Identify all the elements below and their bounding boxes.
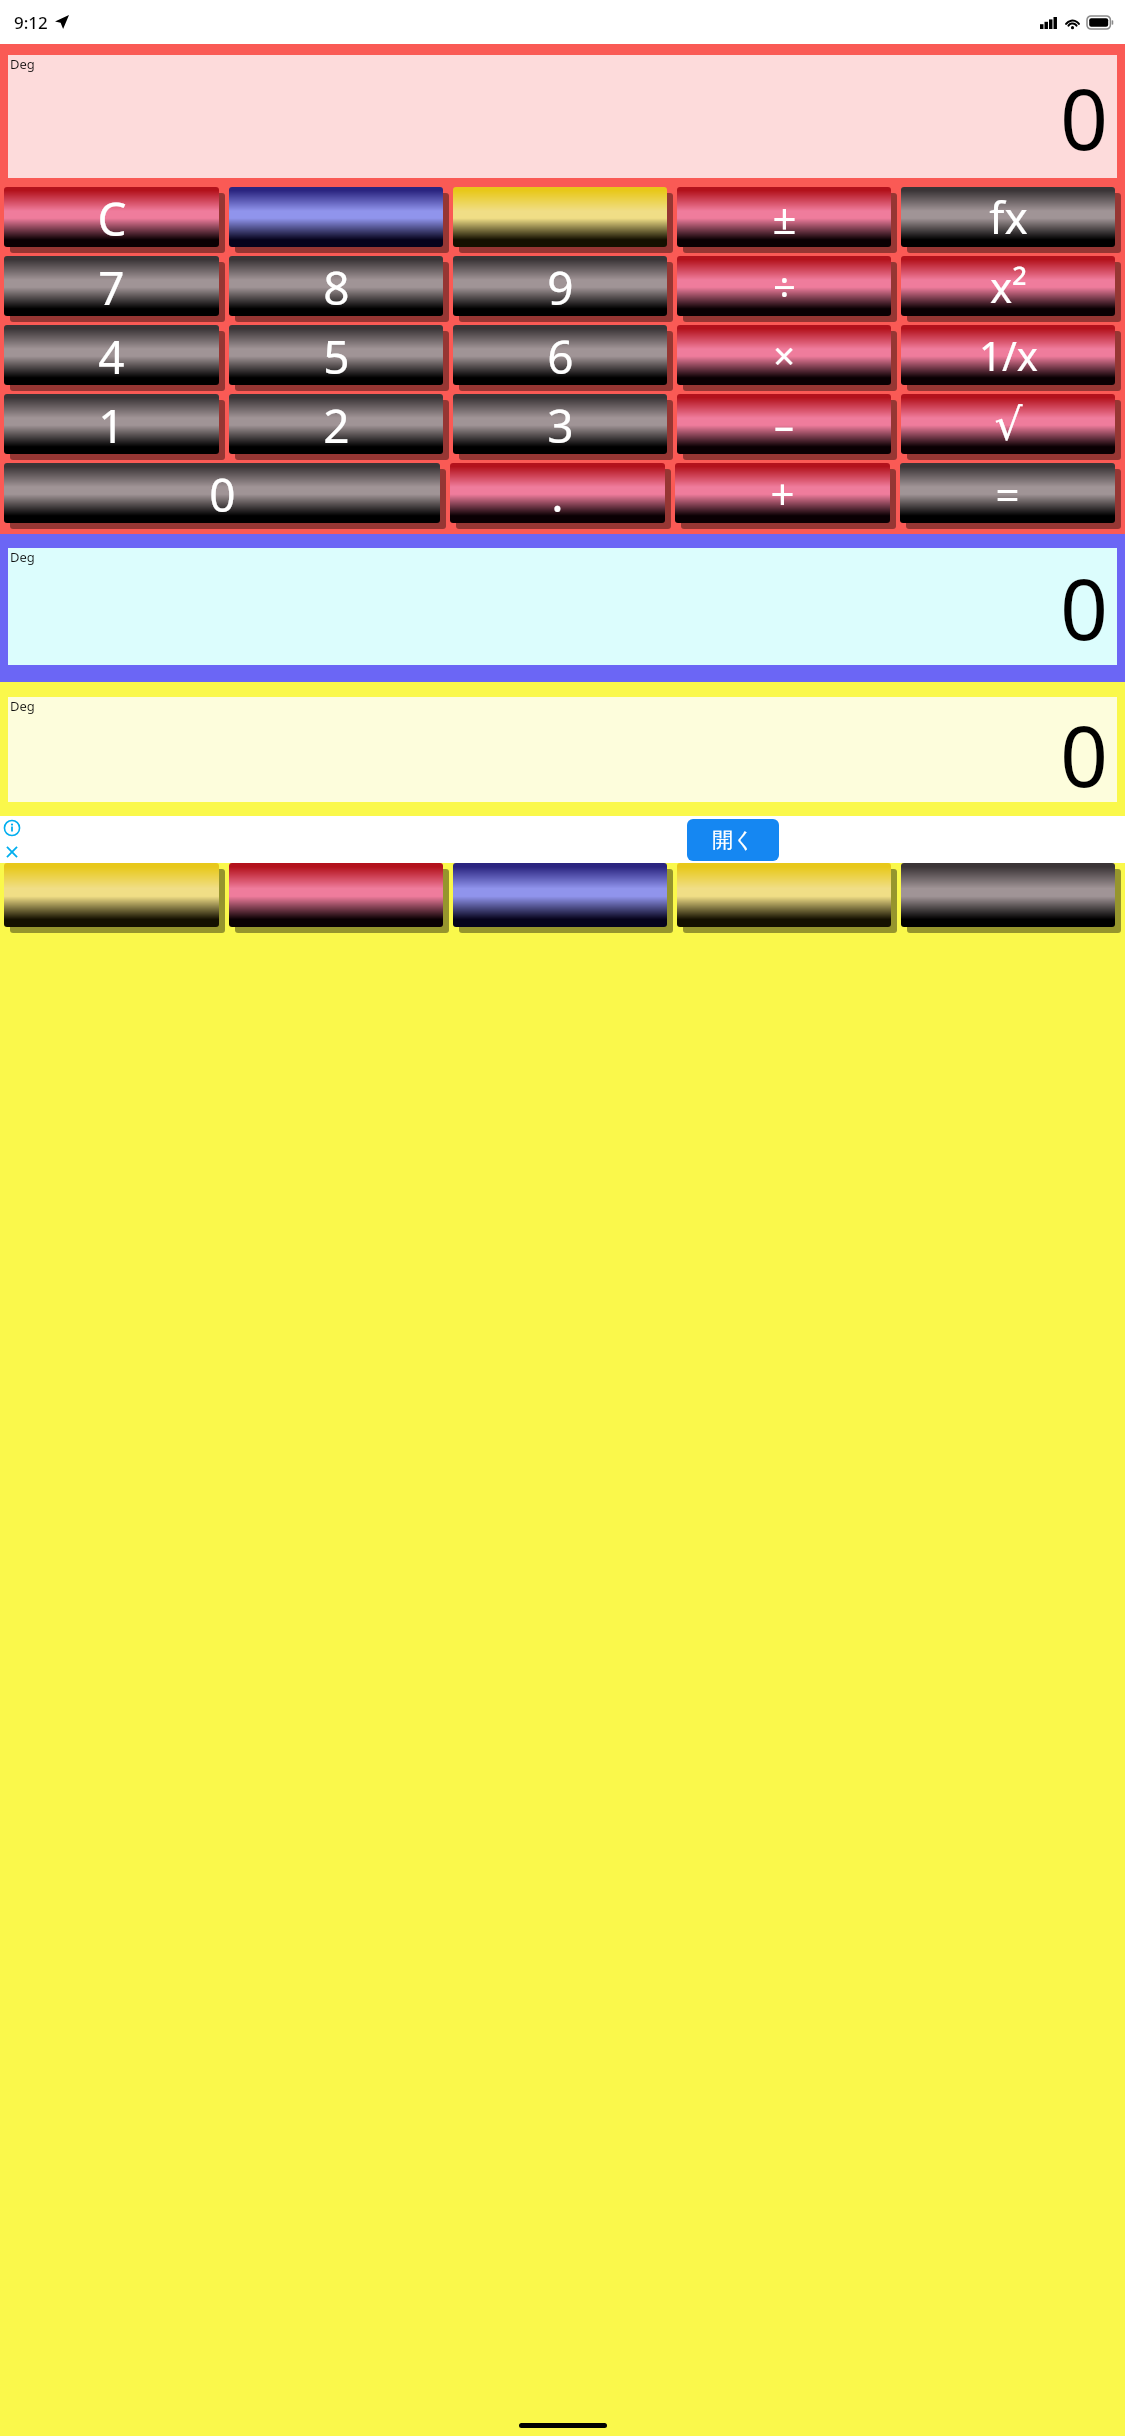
staticText: ÷ [773,259,796,313]
staticText: C [97,187,127,247]
staticText: × [773,329,795,381]
button[interactable]: 5 [229,325,449,391]
button[interactable]: Ad info [3,819,21,837]
staticText: 5 [323,325,350,385]
staticText: 6 [547,325,574,385]
button[interactable]: + [675,463,896,529]
staticText: x² [990,258,1027,315]
staticText: 9 [547,256,574,316]
staticText: 2 [323,394,350,454]
staticText: 1 [98,394,125,454]
button[interactable]: 1 [4,394,225,460]
staticText: Deg [10,548,35,566]
staticText: 7 [98,256,125,316]
button[interactable]: 8 [229,256,449,322]
button[interactable] [229,863,449,933]
staticText: Deg [10,697,35,715]
button[interactable]: . [450,463,671,529]
button[interactable]: 2 [229,394,449,460]
button[interactable]: × [677,325,897,391]
button[interactable]: = [900,463,1121,529]
button[interactable]: 0 [4,463,446,529]
staticText: 0 [1060,550,1109,664]
staticText: fx [989,187,1028,247]
staticText: √ [994,399,1023,450]
button[interactable] [453,187,673,253]
staticText: – [774,397,794,451]
button[interactable]: fx [901,187,1121,253]
staticText: 4 [98,325,125,385]
staticText: = [995,465,1020,522]
button[interactable] [677,863,897,933]
button[interactable]: 1/x [901,325,1121,391]
staticText: 9:12 [14,11,48,34]
staticText: 0 [1060,60,1109,174]
staticText: 0 [1060,697,1109,802]
button[interactable]: 9 [453,256,673,322]
staticText: . [551,463,564,523]
button[interactable]: 3 [453,394,673,460]
button[interactable]: 4 [4,325,225,391]
button[interactable]: 開く [687,819,779,861]
button[interactable]: 7 [4,256,225,322]
button[interactable]: ± [677,187,897,253]
button[interactable] [901,863,1121,933]
staticText: 1/x [979,328,1038,382]
staticText: 0 [209,463,236,523]
button[interactable] [4,863,225,933]
button[interactable]: 6 [453,325,673,391]
button[interactable]: √ [901,394,1121,460]
button[interactable]: x² [901,256,1121,322]
staticText: 3 [547,394,574,454]
button[interactable]: ÷ [677,256,897,322]
staticText: 開く [712,827,755,853]
button[interactable]: C [4,187,225,253]
staticText: + [770,465,795,522]
button[interactable] [229,187,449,253]
button[interactable] [453,863,673,933]
staticText: ± [772,189,797,246]
staticText: 8 [323,256,350,316]
button[interactable]: Close ad [3,843,21,861]
staticText: Deg [10,55,35,73]
button[interactable]: – [677,394,897,460]
